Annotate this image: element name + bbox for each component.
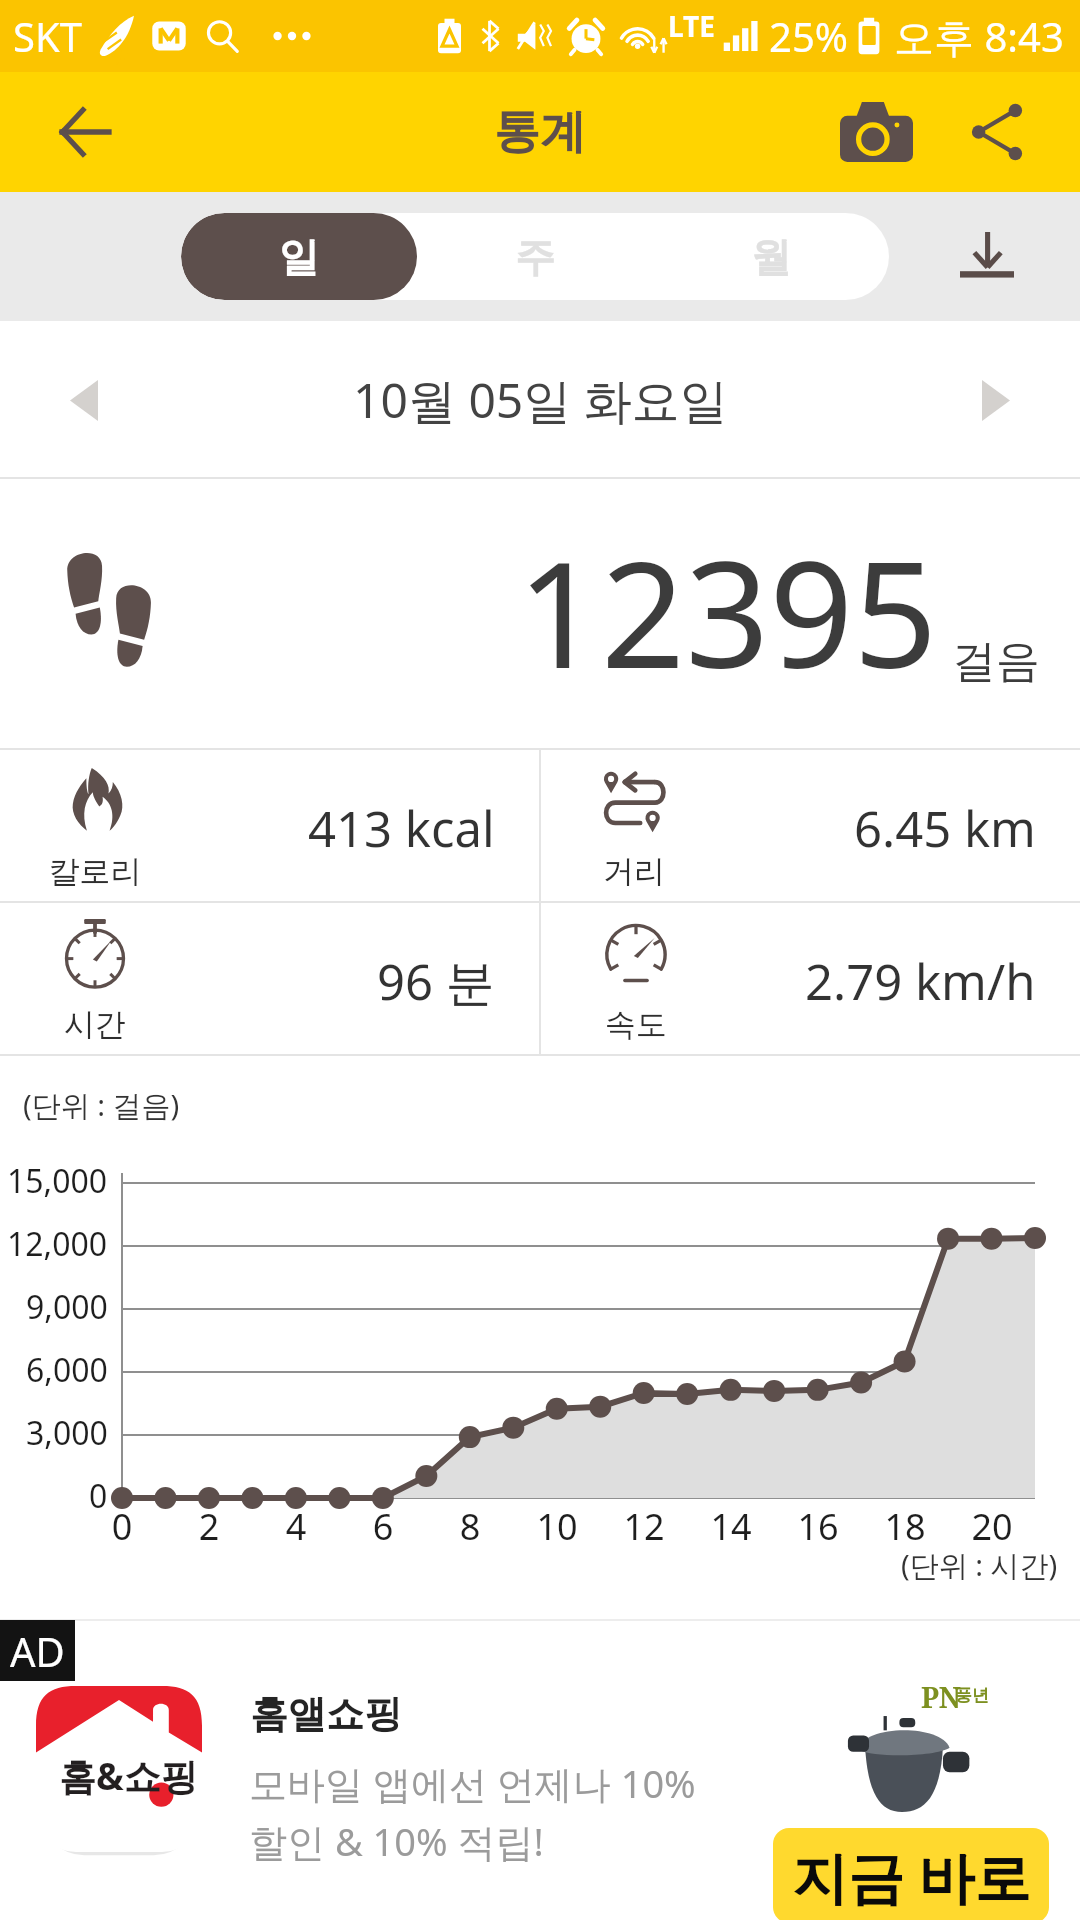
- staticText: 홈&쇼핑: [59, 1750, 198, 1801]
- staticText: 0: [89, 1474, 108, 1518]
- button[interactable]: 거리: [541, 750, 1080, 901]
- button[interactable]: Back: [30, 72, 140, 192]
- button[interactable]: 시간: [0, 903, 539, 1054]
- staticText: 2: [174, 1502, 244, 1551]
- staticText: 속도: [550, 1005, 722, 1044]
- button[interactable]: AD: [0, 1619, 1080, 1920]
- staticText: 14: [696, 1502, 766, 1551]
- staticText: 걸음: [952, 634, 1040, 689]
- staticText: (단위 : 걸음): [23, 1085, 180, 1125]
- staticText: 오후 8:43: [894, 9, 1064, 64]
- button[interactable]: Download: [945, 192, 1035, 321]
- staticText: 16: [783, 1502, 853, 1551]
- staticText: PN: [921, 1678, 961, 1716]
- staticText: 월: [751, 232, 791, 282]
- staticText: 2.79 km/h: [805, 948, 1036, 1015]
- button[interactable]: Share: [943, 72, 1050, 192]
- button[interactable]: 주: [417, 213, 653, 300]
- staticText: 거리: [548, 852, 720, 891]
- staticText: 10: [522, 1502, 592, 1551]
- staticText: 주: [515, 232, 555, 282]
- staticText: SKT: [13, 9, 82, 63]
- staticText: 20: [957, 1502, 1027, 1551]
- staticText: 9,000: [26, 1285, 108, 1329]
- button[interactable]: Previous day: [34, 340, 134, 460]
- staticText: 10월 05일 화요일: [353, 367, 728, 433]
- staticText: 홈앨쇼핑: [250, 1690, 402, 1738]
- button[interactable]: 속도: [541, 903, 1080, 1054]
- button[interactable]: Next day: [946, 340, 1046, 460]
- staticText: (단위 : 시간): [901, 1545, 1058, 1585]
- staticText: 6,000: [26, 1348, 108, 1392]
- staticText: 6.45 km: [854, 795, 1036, 862]
- staticText: 통계: [494, 103, 586, 161]
- staticText: LTE: [668, 7, 715, 45]
- staticText: 6: [348, 1502, 418, 1551]
- staticText: 0: [87, 1502, 157, 1551]
- staticText: 413 kcal: [308, 795, 495, 862]
- staticText: 18: [870, 1502, 940, 1551]
- staticText: 96 분: [377, 948, 495, 1015]
- button[interactable]: 지금 바로: [773, 1828, 1049, 1920]
- staticText: 12: [609, 1502, 679, 1551]
- staticText: 4: [261, 1502, 331, 1551]
- staticText: 15,000: [7, 1159, 108, 1203]
- staticText: AD: [10, 1624, 65, 1678]
- staticText: 시간: [10, 1005, 180, 1044]
- staticText: 12,000: [7, 1222, 108, 1266]
- staticText: 풍년: [955, 1685, 989, 1706]
- staticText: 모바일 앱에선 언제나 10% 할인 & 10% 적립!: [249, 1757, 696, 1867]
- button[interactable]: 일: [181, 213, 417, 300]
- staticText: 3,000: [26, 1411, 108, 1455]
- staticText: 12395: [517, 511, 938, 711]
- button[interactable]: 칼로리: [0, 750, 539, 901]
- staticText: 25%: [769, 9, 848, 63]
- staticText: 8: [435, 1502, 505, 1551]
- staticText: 칼로리: [13, 852, 177, 891]
- staticText: 일: [279, 232, 319, 282]
- button[interactable]: 월: [653, 213, 889, 300]
- button[interactable]: Camera: [820, 72, 933, 192]
- staticText: 지금 바로: [792, 1838, 1031, 1914]
